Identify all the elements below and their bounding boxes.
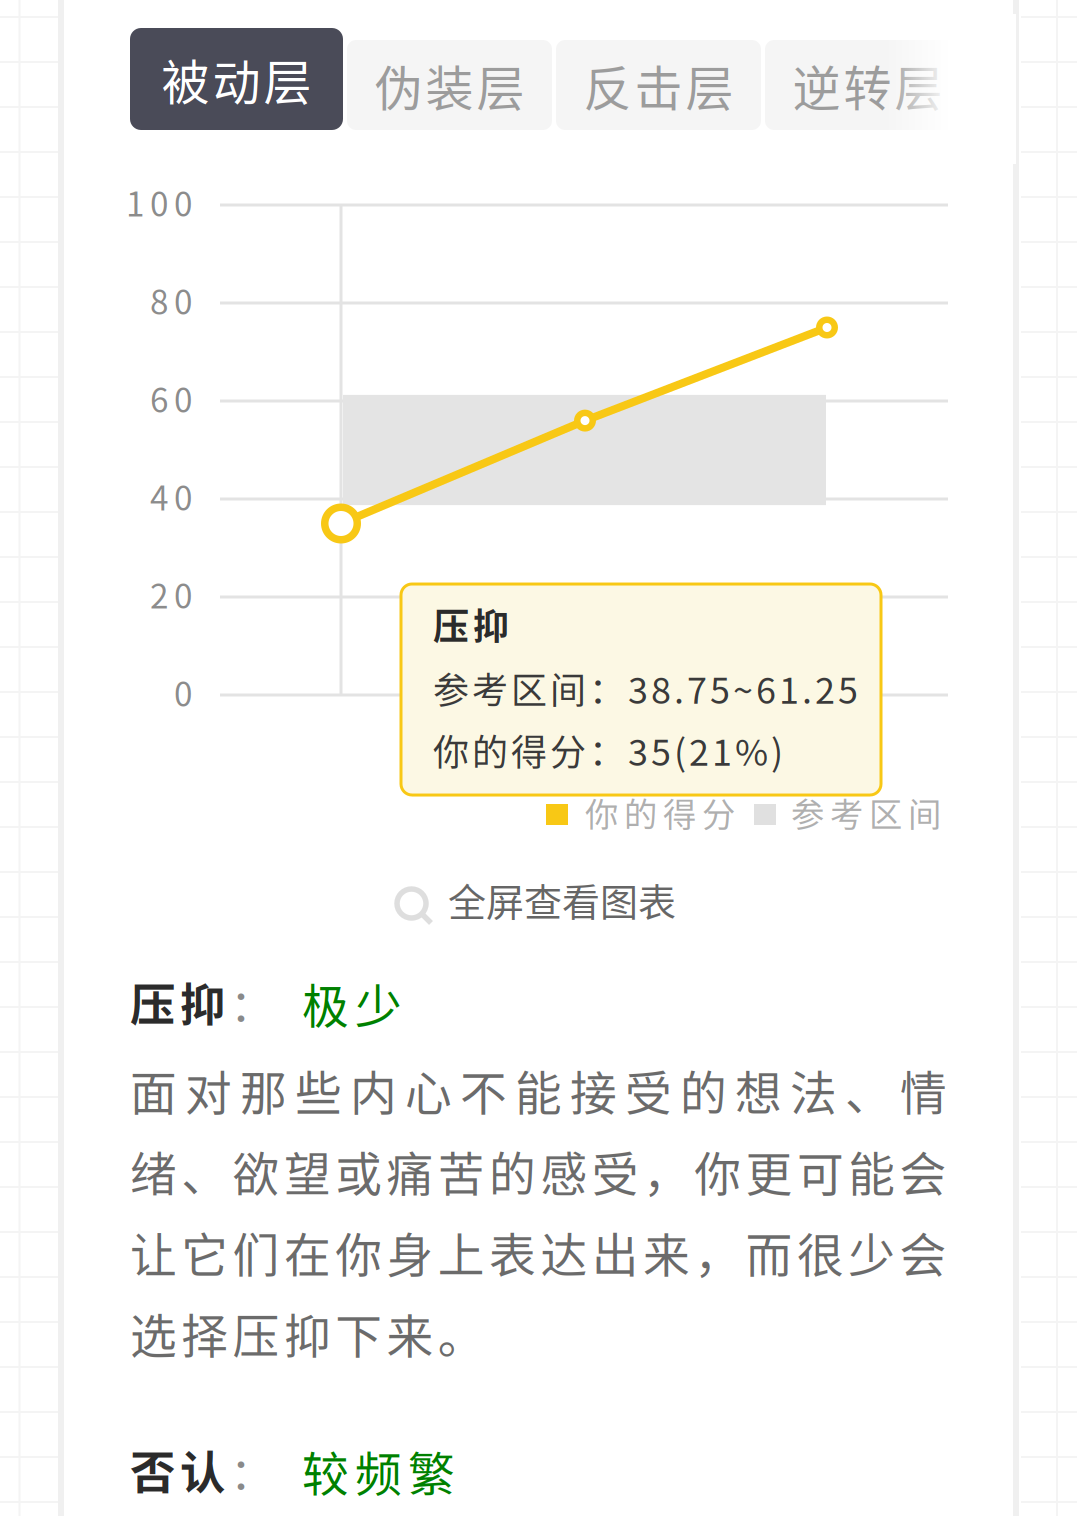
staticText: 让它们在你身上表达出来，而很少会 (130, 1218, 946, 1286)
staticText: 压抑 (130, 969, 225, 1035)
staticText: 否认 (130, 1437, 225, 1503)
staticText: 参考区间：38.75~61.25 (433, 662, 858, 714)
staticText: 100 (126, 178, 193, 226)
staticText: 较频繁 (302, 1437, 455, 1505)
staticText: 20 (150, 570, 193, 618)
staticText: 面对那些内心不能接受的想法、情 (130, 1056, 947, 1124)
staticText: 80 (150, 276, 193, 324)
staticText: 参考区间 (791, 788, 941, 836)
staticText: 选择压抑下来。 (130, 1299, 485, 1367)
button[interactable]: 全屏查看图表 (397, 886, 717, 948)
button[interactable]: 伪装层 (347, 34, 552, 124)
staticText: ： (230, 1439, 274, 1503)
staticText: 0 (174, 668, 193, 716)
button[interactable]: 反击层 (556, 34, 761, 124)
staticText: 你的得分：35(21%) (433, 724, 783, 776)
staticText: 被动层 (161, 44, 311, 114)
staticText: 逆转层 (792, 50, 942, 120)
staticText: 反击层 (583, 50, 733, 120)
staticText: 你的得分 (585, 788, 735, 836)
staticText: 压抑 (433, 598, 509, 650)
staticText: 40 (150, 472, 193, 520)
staticText: 绪、欲望或痛苦的感受，你更可能会 (130, 1137, 946, 1205)
button[interactable]: 被动层 (130, 28, 343, 130)
staticText: 全屏查看图表 (448, 872, 676, 927)
staticText: 伪装层 (374, 50, 524, 120)
staticText: 极少 (302, 969, 402, 1037)
staticText: 60 (150, 374, 193, 422)
button[interactable]: 逆转层 (765, 34, 970, 124)
staticText: ： (230, 971, 274, 1035)
